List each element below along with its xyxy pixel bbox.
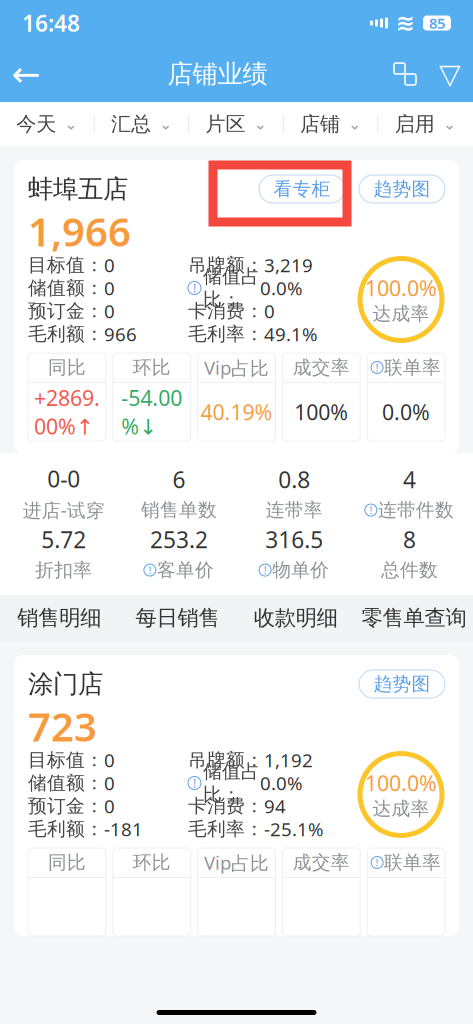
- staticText: 0: [264, 299, 275, 323]
- staticText: 客单价: [157, 559, 214, 581]
- staticText: 1,966: [28, 204, 131, 257]
- staticText: 6: [172, 464, 185, 495]
- staticText: +2869.00%↑: [34, 384, 100, 440]
- staticText: 253.2: [150, 524, 208, 555]
- staticText: 汇总: [111, 112, 151, 136]
- staticText: 联单率: [384, 851, 441, 874]
- button[interactable]: 店铺: [284, 102, 378, 146]
- staticText: 吊牌额：: [188, 253, 264, 276]
- staticText: 卡消费：: [188, 794, 264, 817]
- staticText: 0: [104, 794, 115, 818]
- staticText: 毛利额：: [28, 322, 104, 345]
- button[interactable]: 汇总: [95, 102, 189, 146]
- staticText: !: [376, 360, 379, 375]
- button[interactable]: 趋势图: [359, 175, 445, 203]
- staticText: 储值占比：: [203, 760, 260, 806]
- staticText: 毛利率：: [188, 322, 264, 345]
- staticText: !: [193, 280, 196, 296]
- staticText: 0: [104, 748, 115, 772]
- staticText: 1,192: [264, 748, 313, 772]
- staticText: 储值额：: [28, 771, 104, 794]
- staticText: 店铺业绩: [167, 58, 267, 89]
- staticText: 4: [403, 464, 416, 495]
- staticText: 16:48: [22, 8, 80, 38]
- staticText: 销售单数: [141, 499, 217, 521]
- staticText: 进店-试穿: [23, 498, 105, 522]
- staticText: 同比: [48, 851, 86, 874]
- staticText: ⌄: [348, 115, 361, 133]
- staticText: 100.0%: [365, 274, 437, 302]
- staticText: 趋势图: [373, 672, 430, 695]
- staticText: 966: [104, 322, 137, 346]
- button[interactable]: 趋势图: [359, 670, 445, 698]
- staticText: 0: [104, 299, 115, 323]
- staticText: 储值占比：: [203, 265, 260, 311]
- staticText: 收款明细: [254, 605, 338, 631]
- staticText: 3,219: [264, 253, 313, 277]
- staticText: 0.0%: [260, 771, 303, 795]
- staticText: 今天: [16, 112, 56, 136]
- staticText: 94: [264, 794, 286, 818]
- staticText: 0: [104, 771, 115, 795]
- staticText: 5.72: [41, 524, 86, 555]
- staticText: Vip占比: [204, 850, 269, 875]
- staticText: 成交率: [293, 356, 350, 379]
- staticText: 0.0%: [382, 398, 430, 426]
- staticText: 毛利率：: [188, 817, 264, 840]
- staticText: !: [369, 503, 372, 517]
- staticText: 每日销售: [135, 605, 219, 631]
- staticText: 8: [403, 524, 416, 555]
- button[interactable]: Back: [0, 48, 52, 100]
- staticText: 目标值：: [28, 748, 104, 771]
- staticText: 成交率: [293, 851, 350, 874]
- staticText: 达成率: [372, 797, 429, 820]
- staticText: 储值额：: [28, 276, 104, 299]
- staticText: 趋势图: [373, 177, 430, 200]
- button[interactable]: Filter: [427, 48, 473, 100]
- staticText: 店铺: [300, 112, 340, 136]
- button[interactable]: 每日销售: [118, 595, 236, 641]
- staticText: 达成率: [372, 302, 429, 325]
- staticText: 看专柜: [273, 177, 330, 200]
- staticText: 销售明细: [17, 605, 101, 631]
- staticText: 0: [104, 253, 115, 277]
- button[interactable]: 片区: [189, 102, 284, 146]
- staticText: 卡消费：: [188, 299, 264, 322]
- button[interactable]: 看专柜: [259, 175, 345, 203]
- staticText: 49.1%: [264, 322, 318, 346]
- button[interactable]: 收款明细: [236, 595, 355, 641]
- staticText: 0.0%: [260, 276, 303, 300]
- staticText: Vip占比: [204, 355, 269, 380]
- staticText: 同比: [48, 356, 86, 379]
- staticText: 100.0%: [365, 769, 437, 797]
- staticText: ⌄: [64, 115, 77, 133]
- staticText: !: [148, 563, 151, 577]
- staticText: ⌄: [443, 115, 456, 133]
- staticText: 预订金：: [28, 299, 104, 322]
- staticText: 预订金：: [28, 794, 104, 817]
- staticText: 蚌埠五店: [28, 173, 128, 204]
- staticText: 40.19%: [200, 398, 272, 426]
- staticText: ⌄: [253, 115, 266, 133]
- staticText: 连带率: [266, 499, 323, 521]
- staticText: 316.5: [265, 524, 323, 555]
- staticText: 连带件数: [378, 499, 454, 521]
- staticText: ▽: [439, 58, 461, 90]
- staticText: 目标值：: [28, 253, 104, 276]
- button[interactable]: 今天: [0, 102, 95, 146]
- staticText: 0.8: [278, 464, 310, 495]
- staticText: !: [264, 563, 267, 577]
- button[interactable]: 启用: [378, 102, 473, 146]
- button[interactable]: 零售单查询: [355, 595, 473, 641]
- staticText: 折扣率: [35, 559, 92, 581]
- staticText: 总件数: [381, 559, 438, 581]
- staticText: -181: [104, 817, 143, 841]
- staticText: 零售单查询: [361, 605, 466, 631]
- staticText: ⌄: [159, 115, 172, 133]
- staticText: 启用: [395, 112, 435, 136]
- staticText: !: [376, 855, 379, 870]
- staticText: 物单价: [272, 559, 329, 581]
- button[interactable]: Compare: [383, 48, 427, 100]
- staticText: 吊牌额：: [188, 748, 264, 771]
- button[interactable]: 销售明细: [0, 595, 118, 641]
